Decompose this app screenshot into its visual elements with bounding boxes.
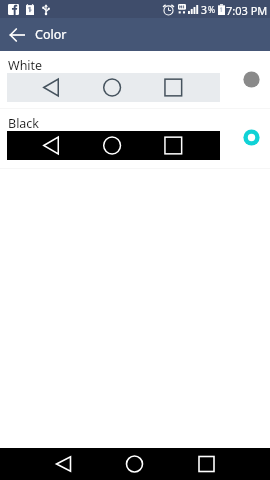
button[interactable]: Select Black theme	[243, 129, 260, 146]
staticText: Color	[35, 26, 67, 43]
button[interactable]: Select White theme	[243, 71, 260, 88]
button[interactable]: Black	[0, 115, 270, 169]
staticText: White	[8, 57, 43, 74]
staticText: %	[208, 4, 216, 16]
button[interactable]: White	[0, 57, 270, 109]
button[interactable]: Recent apps	[184, 448, 229, 480]
staticText: 3	[201, 3, 208, 17]
button[interactable]: Back	[41, 448, 86, 480]
button[interactable]: Back	[3, 21, 31, 49]
button[interactable]: Home	[112, 448, 157, 480]
staticText: 7:03 PM	[226, 3, 268, 18]
staticText: Black	[8, 115, 40, 132]
